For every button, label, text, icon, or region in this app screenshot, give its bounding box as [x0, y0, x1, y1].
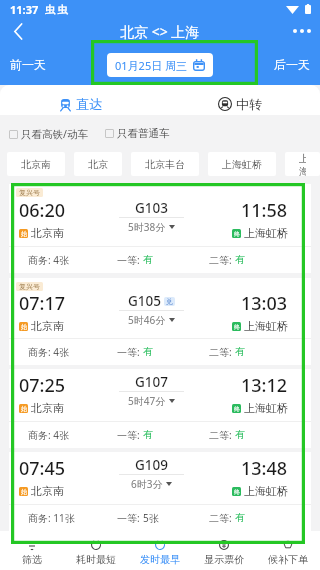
staticText: 后一天 [274, 57, 310, 72]
staticText: 复兴号 [19, 282, 40, 291]
staticText: G107 [135, 373, 168, 391]
staticText: 07:17 [19, 291, 66, 316]
button[interactable]: 耗时最短 [64, 531, 128, 570]
staticText: 商务: 4张 [28, 253, 69, 267]
staticText: 商务: 11张 [28, 511, 75, 525]
button[interactable]: 前一天 [6, 53, 50, 76]
staticText: 一等: [117, 428, 143, 442]
staticText: 5时38分 [128, 220, 166, 234]
staticText: 5时46分 [128, 313, 166, 327]
staticText: 二等: [209, 345, 235, 359]
staticText: 虫 虫 [45, 2, 68, 16]
staticText: 一等: [117, 511, 143, 525]
button[interactable]: 北京南 [7, 152, 65, 176]
button[interactable]: 后一天 [270, 53, 314, 76]
staticText: G109 [135, 456, 168, 474]
staticText: G103 [135, 199, 168, 217]
button[interactable]: 北京丰台 [131, 152, 199, 176]
staticText: 发时最早 [140, 553, 180, 566]
staticText: 有 [235, 253, 245, 266]
staticText: 北京南 [31, 484, 64, 498]
button[interactable]: 上海虹桥 [208, 152, 276, 176]
staticText: 始 [21, 230, 27, 238]
staticText: 一等: [117, 253, 143, 267]
staticText: 兑 [166, 297, 173, 306]
staticText: 上海虹桥 [244, 401, 288, 415]
button[interactable]: 只看高铁/动车 [9, 127, 88, 141]
staticText: 07:45 [19, 456, 66, 481]
staticText: 筛选 [22, 553, 42, 566]
staticText: 一等: [117, 345, 143, 359]
staticText: 直达 [76, 96, 102, 112]
staticText: 06:20 [19, 198, 66, 223]
staticText: 前一天 [10, 57, 46, 72]
button[interactable]: 01月25日 周三 [107, 53, 213, 77]
button[interactable]: 发时最早 [128, 531, 192, 570]
button[interactable]: 中转 [160, 93, 320, 115]
button[interactable]: 上海 [285, 152, 320, 176]
staticText: 有 [143, 428, 153, 441]
staticText: 5时47分 [128, 394, 166, 408]
button[interactable]: 显示票价 [192, 531, 256, 570]
staticText: 13:12 [241, 373, 288, 398]
staticText: 商务: 4张 [28, 428, 69, 442]
staticText: 13:48 [241, 456, 288, 481]
staticText: 有 [143, 253, 153, 266]
staticText: 上海虹桥 [244, 319, 288, 333]
staticText: 只看普通车 [117, 127, 170, 140]
staticText: 07:25 [19, 373, 66, 398]
staticText: 候补下单 [268, 553, 308, 566]
button[interactable]: 候补下单 [256, 531, 320, 570]
staticText: 北京 <> 上海 [120, 22, 200, 41]
staticText: 始 [21, 488, 27, 496]
button[interactable]: Back [0, 18, 36, 44]
staticText: 二等: [209, 511, 235, 525]
staticText: 北京南 [21, 158, 51, 171]
staticText: 13:03 [241, 291, 288, 316]
button[interactable]: More options [284, 18, 320, 44]
staticText: 商务: 4张 [28, 345, 69, 359]
staticText: 终 [234, 230, 240, 238]
button[interactable]: 07:25 [9, 369, 311, 448]
staticText: 北京南 [31, 226, 64, 240]
button[interactable]: 复兴号 [9, 278, 311, 365]
staticText: 二等: [209, 253, 235, 267]
staticText: 北京南 [31, 401, 64, 415]
staticText: 上海虹桥 [244, 226, 288, 240]
staticText: 有 [143, 345, 153, 358]
staticText: 只看高铁/动车 [21, 127, 88, 141]
staticText: 始 [21, 323, 27, 331]
button[interactable]: 07:45 [9, 452, 311, 531]
staticText: 有 [235, 345, 245, 358]
staticText: 上海 [299, 152, 306, 176]
staticText: G105 [128, 292, 161, 310]
button[interactable]: 筛选 [0, 531, 64, 570]
button[interactable]: 复兴号 [9, 184, 311, 273]
staticText: 北京丰台 [145, 158, 185, 171]
staticText: 有 [235, 511, 245, 524]
staticText: 有 [235, 428, 245, 441]
button[interactable]: 直达 [0, 93, 160, 115]
staticText: 显示票价 [204, 553, 244, 566]
staticText: 终 [234, 405, 240, 413]
staticText: 北京南 [31, 319, 64, 333]
staticText: 11:58 [241, 198, 288, 223]
staticText: 上海虹桥 [244, 484, 288, 498]
staticText: 中转 [236, 96, 262, 112]
staticText: 二等: [209, 428, 235, 442]
button[interactable]: 北京 [74, 152, 122, 176]
staticText: 耗时最短 [76, 553, 116, 566]
staticText: 始 [21, 405, 27, 413]
staticText: 上海虹桥 [222, 158, 262, 171]
staticText: 复兴号 [19, 188, 40, 197]
staticText: 5张 [143, 511, 159, 525]
staticText: 终 [234, 323, 240, 331]
staticText: 01月25日 周三 [115, 58, 188, 73]
staticText: 北京 [88, 158, 108, 171]
staticText: 11:37 [10, 2, 39, 17]
staticText: 6时3分 [131, 477, 163, 491]
staticText: 终 [234, 488, 240, 496]
button[interactable]: 只看普通车 [105, 127, 170, 140]
